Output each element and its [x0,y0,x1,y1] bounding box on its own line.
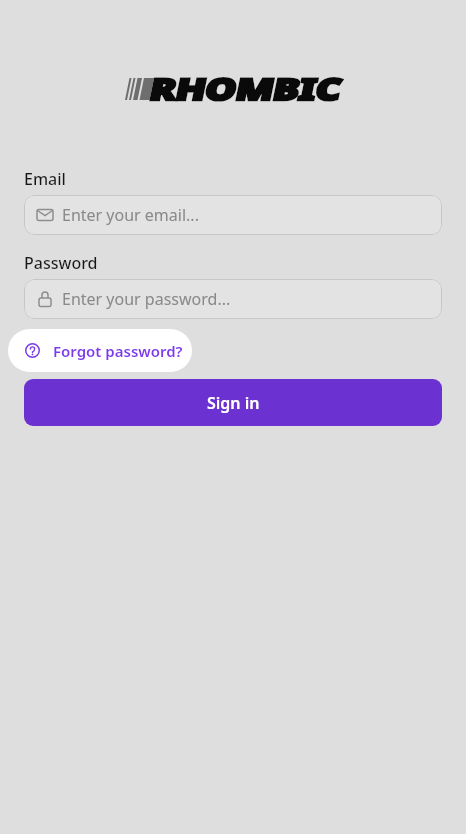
button[interactable]: Enter your password... [24,279,442,319]
button[interactable]: Sign in [24,379,442,426]
staticText: Sign in [207,392,260,414]
button[interactable]: Enter your email... [24,195,442,235]
button[interactable]: Forgot password? [8,329,192,372]
staticText: Enter your password... [62,288,231,310]
staticText: Enter your email... [62,204,199,226]
staticText: Email [24,168,66,190]
staticText: Forgot password? [53,341,183,361]
staticText: Password [24,252,98,274]
